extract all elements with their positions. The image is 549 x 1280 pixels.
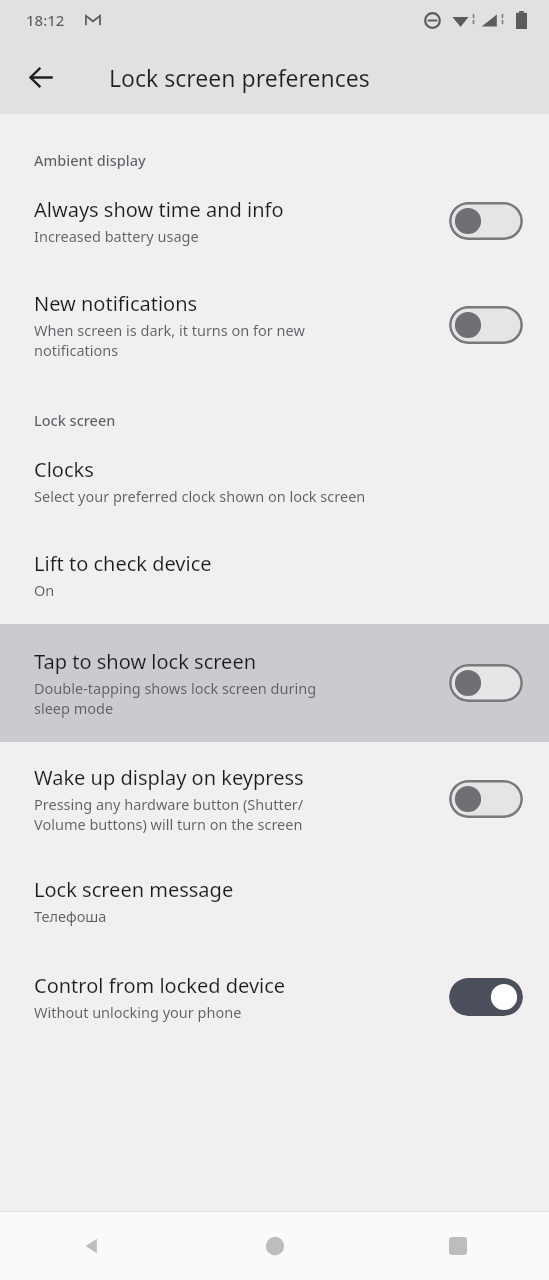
button[interactable]: Off (449, 664, 523, 702)
staticText: Without unlocking your phone (34, 1002, 242, 1022)
button[interactable]: Back (13, 49, 69, 105)
staticText: New notifications (34, 290, 198, 317)
staticText: Телефоша (34, 906, 107, 926)
staticText: Lift to check device (34, 550, 212, 577)
button[interactable]: Back (0, 1212, 183, 1280)
staticText: Pressing any hardware button (Shutter/ V… (34, 794, 304, 834)
staticText: Clocks (34, 456, 94, 483)
button[interactable]: On (449, 978, 523, 1016)
staticText: Lock screen preferences (109, 62, 370, 93)
staticText: Wake up display on keypress (34, 764, 304, 791)
button[interactable]: New notifications (0, 268, 549, 382)
staticText: Lock screen message (34, 876, 234, 903)
staticText: Lock screen (34, 410, 549, 430)
button[interactable]: Control from locked device (0, 950, 549, 1044)
staticText: Select your preferred clock shown on loc… (34, 486, 366, 506)
button[interactable]: Off (449, 202, 523, 240)
staticText: Tap to show lock screen (34, 648, 257, 675)
staticText: Ambient display (34, 150, 549, 170)
button[interactable]: Off (449, 780, 523, 818)
staticText: Control from locked device (34, 972, 286, 999)
staticText: On (34, 580, 55, 600)
staticText: 18:12 (26, 10, 65, 30)
button[interactable]: Off (449, 306, 523, 344)
staticText: Increased battery usage (34, 226, 199, 246)
button[interactable]: Always show time and info (0, 170, 549, 268)
button[interactable]: Recent apps (366, 1212, 549, 1280)
button[interactable]: Wake up display on keypress (0, 742, 549, 856)
staticText: When screen is dark, it turns on for new… (34, 320, 305, 360)
button[interactable]: Tap to show lock screen (0, 624, 549, 742)
staticText: Double-tapping shows lock screen during … (34, 678, 317, 718)
button[interactable]: Lock screen message (0, 856, 549, 950)
button[interactable]: Clocks (0, 430, 549, 528)
button[interactable]: Lift to check device (0, 528, 549, 624)
staticText: Always show time and info (34, 196, 284, 223)
button[interactable]: Home (183, 1212, 366, 1280)
